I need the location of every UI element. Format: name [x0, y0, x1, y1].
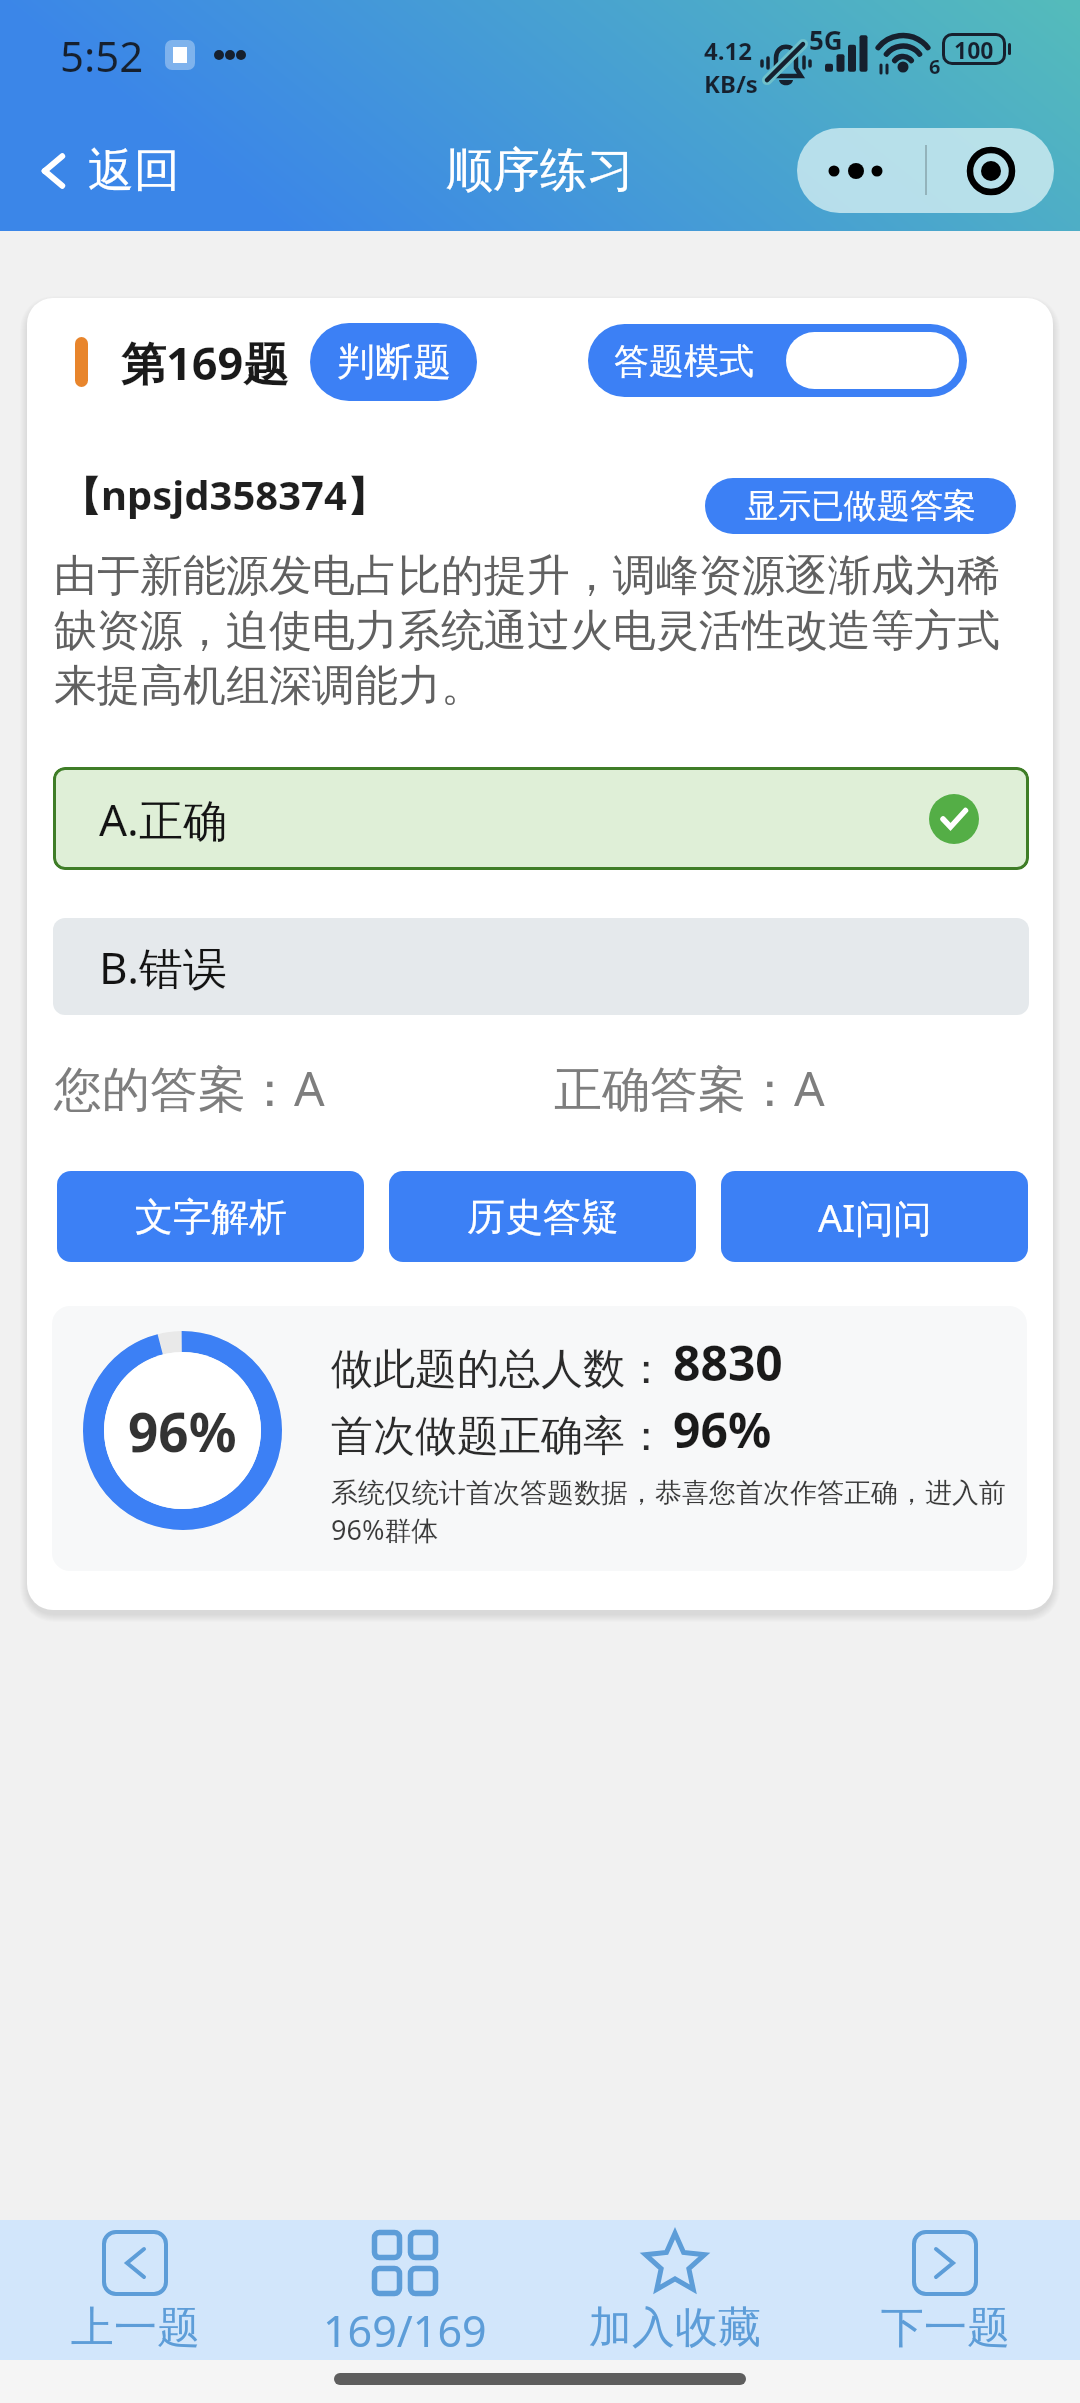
staticText: 文字解析 — [135, 1193, 287, 1241]
button[interactable]: 上一题 — [0, 2220, 270, 2360]
staticText: A.正确 — [99, 789, 227, 849]
staticText: 第169题 — [121, 332, 289, 393]
staticText: 由于新能源发电占比的提升，调峰资源逐渐成为稀缺资源，迫使电力系统通过火电灵活性改… — [54, 549, 1031, 713]
staticText: 96% — [128, 1395, 237, 1467]
staticText: 历史答疑 — [467, 1193, 619, 1241]
staticText: 下一题 — [881, 2301, 1010, 2355]
staticText: 5:52 — [60, 27, 144, 84]
staticText: 答题模式 — [614, 339, 754, 383]
staticText: 6 — [929, 53, 941, 80]
staticText: 判断题 — [337, 338, 451, 386]
button[interactable]: 答题模式 — [588, 324, 967, 397]
button[interactable]: 判断题 — [310, 323, 477, 401]
staticText: 【npsjd358374】 — [61, 467, 387, 522]
staticText: 96% — [673, 1397, 772, 1462]
button[interactable]: 显示已做题答案 — [705, 478, 1016, 534]
staticText: 顺序练习 — [446, 141, 634, 200]
staticText: 您的答案：A — [54, 1055, 325, 1121]
staticText: AI问问 — [818, 1191, 932, 1243]
button[interactable]: 169/169 — [270, 2220, 540, 2360]
button[interactable]: 历史答疑 — [389, 1171, 696, 1262]
button[interactable]: 文字解析 — [57, 1171, 364, 1262]
staticText: 加入收藏 — [589, 2301, 761, 2355]
staticText: 显示已做题答案 — [745, 485, 976, 527]
button[interactable]: B.错误 — [53, 918, 1029, 1015]
staticText: 正确答案：A — [554, 1055, 825, 1121]
button[interactable]: A.正确 — [53, 767, 1029, 870]
staticText: 首次做题正确率： — [331, 1410, 667, 1463]
staticText: 上一题 — [71, 2301, 200, 2355]
button[interactable]: 加入收藏 — [540, 2220, 810, 2360]
button[interactable]: Close mini program — [927, 128, 1054, 213]
staticText: 100 — [954, 34, 994, 65]
staticText: 系统仅统计首次答题数据，恭喜您首次作答正确，进入前96%群体 — [331, 1476, 1021, 1548]
button[interactable]: AI问问 — [721, 1171, 1028, 1262]
staticText: 4.12 — [704, 34, 752, 67]
button[interactable]: More options — [797, 128, 925, 213]
button[interactable]: 下一题 — [810, 2220, 1080, 2360]
staticText: B.错误 — [99, 937, 227, 997]
staticText: 返回 — [88, 142, 180, 200]
staticText: KB/s — [704, 67, 758, 95]
staticText: 8830 — [673, 1330, 783, 1395]
button[interactable]: 返回 — [0, 128, 200, 214]
staticText: 做此题的总人数： — [331, 1343, 667, 1396]
staticText: 169/169 — [323, 2301, 487, 2360]
staticText: 5G — [809, 22, 843, 57]
